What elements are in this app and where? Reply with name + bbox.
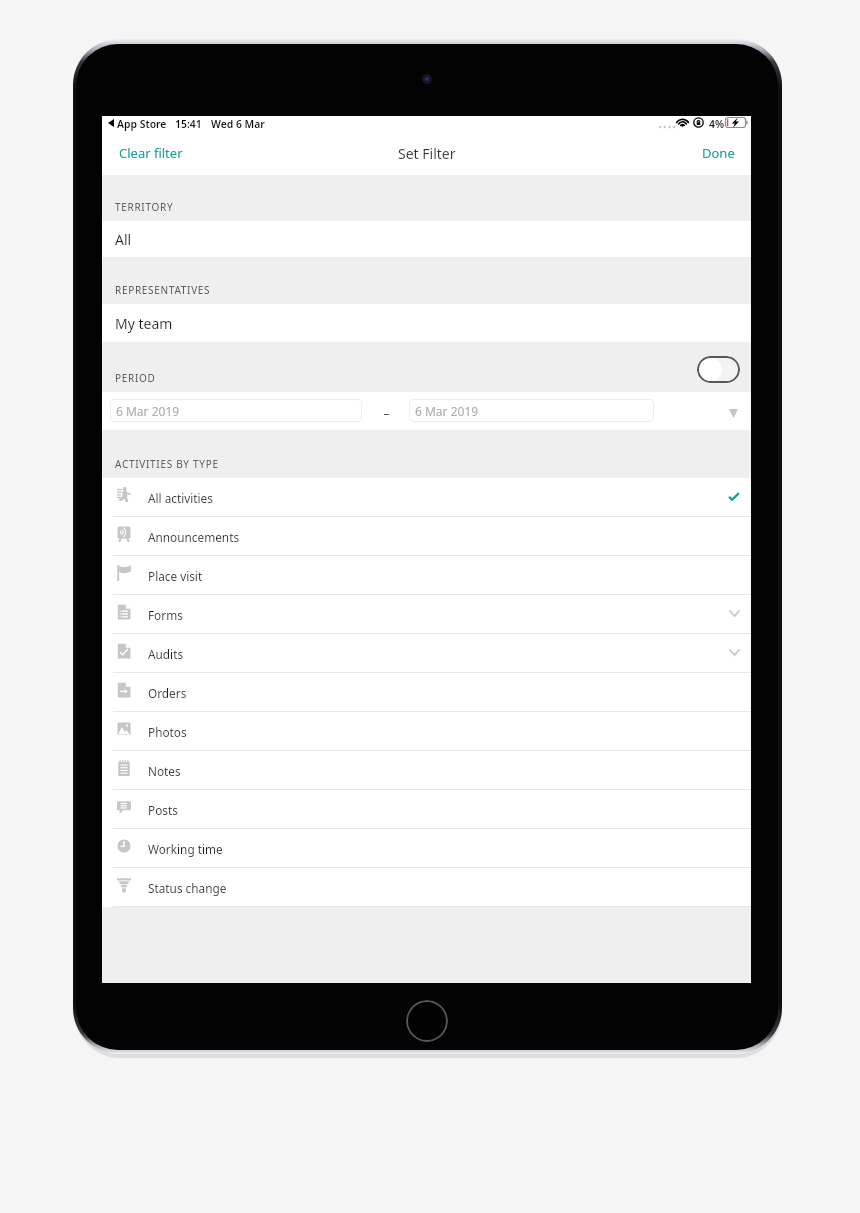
button[interactable]: Photos — [102, 712, 751, 751]
staticText: Working time — [148, 841, 223, 857]
staticText: TERRITORY — [115, 200, 174, 214]
staticText: 15:41 — [175, 117, 202, 131]
staticText: Done — [702, 144, 735, 162]
staticText: REPRESENTATIVES — [115, 283, 211, 297]
staticText: Status change — [148, 880, 227, 896]
staticText: 6 Mar 2019 — [415, 403, 479, 419]
staticText: My team — [115, 314, 173, 333]
button[interactable]: Announcements — [102, 517, 751, 556]
staticText: Photos — [148, 724, 187, 740]
button[interactable]: Working time — [102, 829, 751, 868]
button[interactable]: All activities — [102, 478, 751, 517]
button[interactable]: Done — [690, 138, 751, 172]
button[interactable]: Forms — [102, 595, 751, 634]
staticText: Set Filter — [398, 144, 456, 163]
button[interactable]: Notes — [102, 751, 751, 790]
staticText: Posts — [148, 802, 178, 818]
staticText: ACTIVITIES BY TYPE — [115, 457, 219, 471]
staticText: Forms — [148, 607, 183, 623]
button[interactable]: Toggle period — [697, 356, 740, 383]
staticText: Orders — [148, 685, 187, 701]
button[interactable]: Orders — [102, 673, 751, 712]
staticText: 6 Mar 2019 — [116, 403, 180, 419]
button[interactable]: All — [102, 221, 751, 257]
button[interactable]: Clear filter — [102, 138, 195, 172]
button[interactable]: Expand period options — [715, 396, 743, 426]
staticText: Clear filter — [119, 144, 183, 162]
staticText: 4% — [709, 117, 725, 131]
button[interactable]: My team — [102, 304, 751, 342]
button[interactable]: Place visit — [102, 556, 751, 595]
button[interactable]: Status change — [102, 868, 751, 907]
staticText: All activities — [148, 490, 213, 506]
staticText: Wed 6 Mar — [211, 117, 265, 131]
staticText: Notes — [148, 763, 181, 779]
button[interactable]: 6 Mar 2019 — [110, 399, 362, 422]
button[interactable]: Posts — [102, 790, 751, 829]
staticText: App Store — [117, 117, 167, 131]
staticText: PERIOD — [115, 371, 156, 385]
staticText: Announcements — [148, 529, 240, 545]
button[interactable]: Audits — [102, 634, 751, 673]
staticText: Place visit — [148, 568, 203, 584]
staticText: Audits — [148, 646, 184, 662]
button[interactable]: 6 Mar 2019 — [409, 399, 654, 422]
staticText: All — [115, 230, 132, 249]
